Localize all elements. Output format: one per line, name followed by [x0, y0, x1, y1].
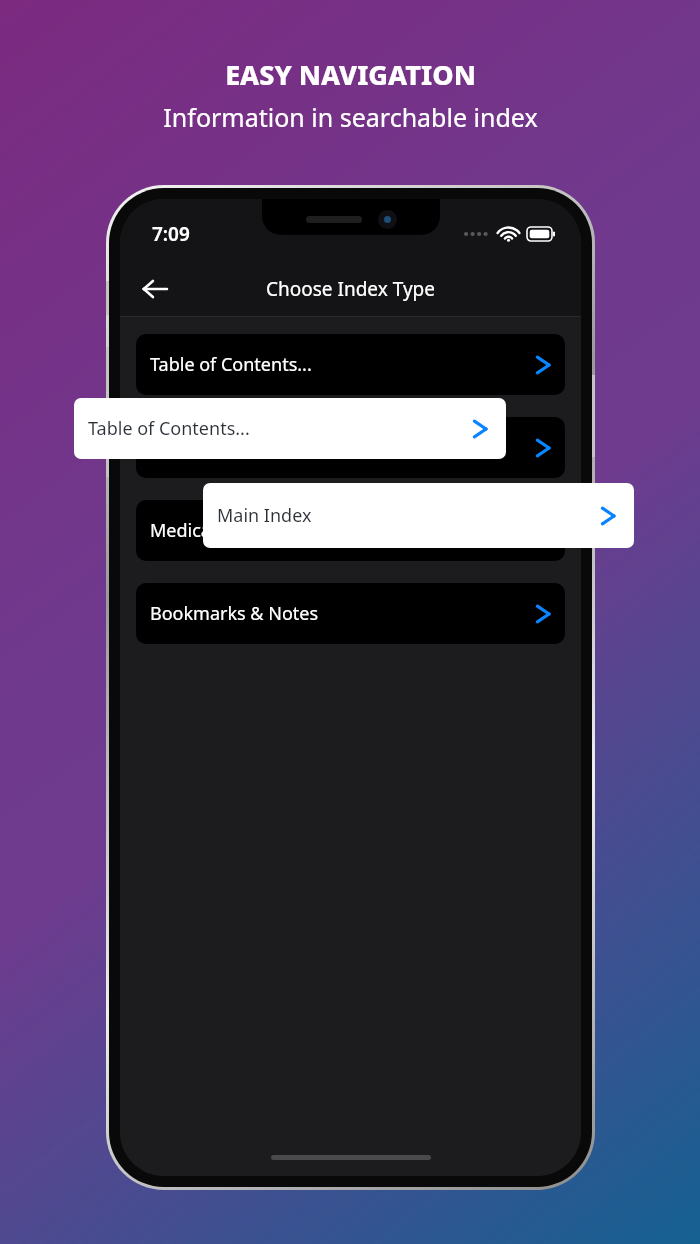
staticText: Main Index [217, 503, 600, 528]
staticText: 7:09 [152, 221, 190, 247]
button[interactable]: Back [132, 266, 178, 312]
button[interactable]: Main Index [203, 483, 634, 548]
staticText: Table of Contents... [150, 352, 535, 377]
staticText: Medications [150, 518, 535, 543]
staticText: Table of Contents... [88, 416, 472, 441]
button[interactable]: Table of Contents... [74, 398, 506, 459]
button[interactable] [136, 417, 565, 478]
staticText: EASY NAVIGATION [225, 56, 476, 93]
staticText: Choose Index Type [266, 276, 435, 302]
staticText: Bookmarks & Notes [150, 601, 535, 626]
staticText: Information in searchable index [163, 100, 538, 134]
button[interactable]: Medications [136, 500, 565, 561]
button[interactable]: Table of Contents... [136, 334, 565, 395]
staticText [150, 435, 535, 460]
button[interactable]: Bookmarks & Notes [136, 583, 565, 644]
